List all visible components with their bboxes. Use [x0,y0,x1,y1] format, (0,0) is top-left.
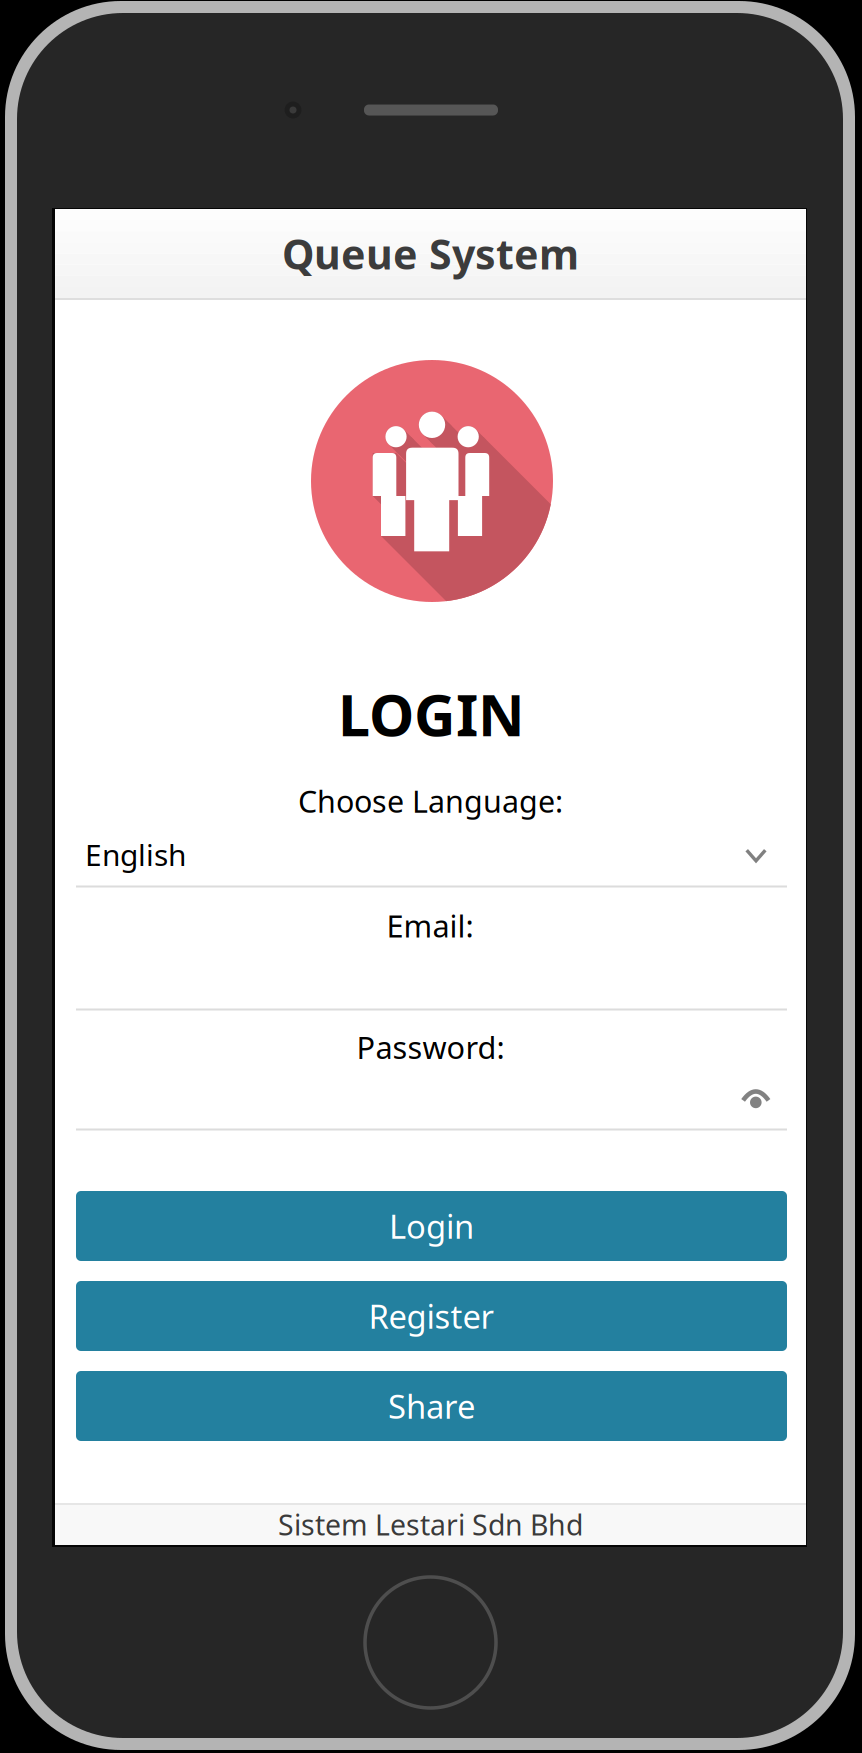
button[interactable]: Show password [733,1076,779,1116]
button[interactable]: Queue System [55,209,806,298]
staticText: Share [388,1384,475,1428]
button[interactable]: Register [76,1281,787,1351]
staticText: Login [389,1204,474,1248]
staticText: Queue System [282,225,579,281]
button[interactable]: English [76,825,787,885]
button[interactable]: Login [76,1191,787,1261]
staticText: English [85,834,186,875]
staticText: Sistem Lestari Sdn Bhd [278,1505,583,1544]
staticText: LOGIN [338,675,525,753]
staticText: Email: [386,905,473,946]
staticText: Password: [356,1026,504,1068]
staticText: Register [368,1294,494,1338]
button[interactable]: Share [76,1371,787,1441]
staticText: Choose Language: [298,780,563,822]
